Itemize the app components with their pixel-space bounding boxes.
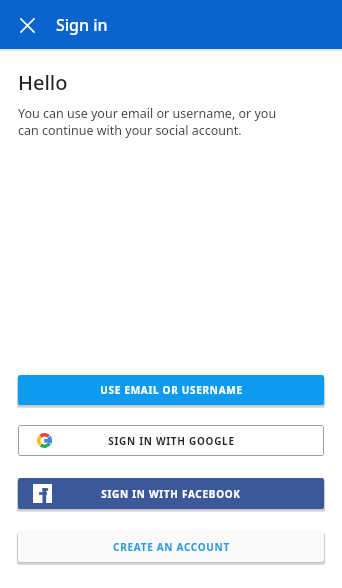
staticText: CREATE AN ACCOUNT xyxy=(113,540,230,554)
staticText: SIGN IN WITH FACEBOOK xyxy=(101,487,241,501)
staticText: Hello xyxy=(18,69,68,96)
staticText: Sign in xyxy=(56,14,108,36)
button[interactable]: Google xyxy=(18,425,324,456)
button[interactable]: Facebook xyxy=(18,478,324,509)
staticText: You can use your email or username, or y… xyxy=(18,105,277,139)
button[interactable]: CREATE AN ACCOUNT xyxy=(18,531,324,562)
staticText: SIGN IN WITH GOOGLE xyxy=(108,434,235,448)
button[interactable]: USE EMAIL OR USERNAME xyxy=(18,375,324,405)
other: Facebook xyxy=(33,484,52,503)
staticText: USE EMAIL OR USERNAME xyxy=(100,383,243,397)
button[interactable]: Close xyxy=(11,9,43,41)
other: Google xyxy=(37,433,52,448)
